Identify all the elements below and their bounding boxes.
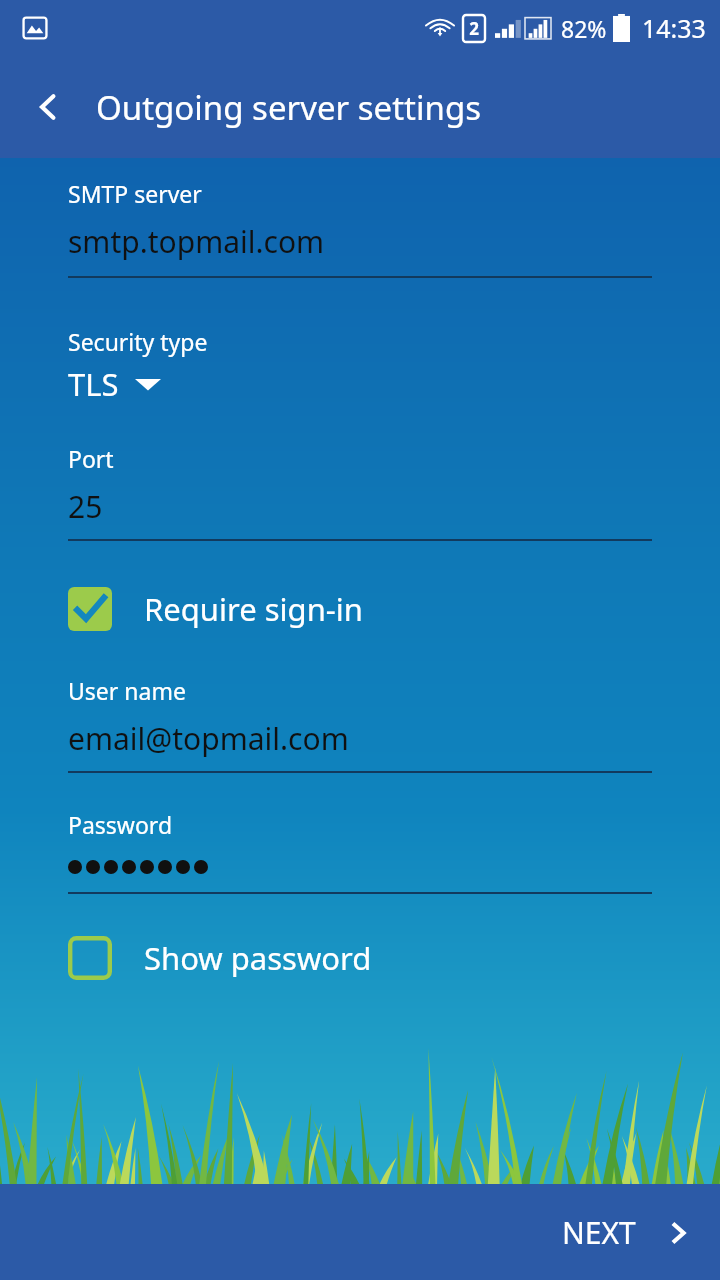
- staticText: Outgoing server settings: [96, 85, 482, 130]
- staticText: SMTP server: [68, 178, 202, 209]
- button[interactable]: Require sign-in: [0, 579, 720, 639]
- staticText: 2: [469, 17, 479, 40]
- button[interactable]: Navigate up: [20, 79, 76, 135]
- staticText: 14:33: [642, 11, 706, 45]
- button[interactable]: TLS: [0, 357, 720, 411]
- staticText: Password: [68, 809, 173, 840]
- staticText: Show password: [144, 937, 372, 979]
- button[interactable]: 25: [0, 474, 720, 527]
- button[interactable]: email@topmail.com: [0, 706, 720, 759]
- staticText: Port: [68, 443, 114, 474]
- staticText: Require sign-in: [144, 588, 363, 630]
- staticText: 82%: [561, 13, 607, 44]
- staticText: Security type: [68, 326, 208, 357]
- button[interactable]: Show password: [0, 928, 720, 988]
- button[interactable]: [0, 840, 720, 880]
- other: Screenshot saved: [22, 15, 48, 41]
- staticText: TLS: [68, 363, 119, 405]
- button[interactable]: smtp.topmail.com: [0, 209, 720, 262]
- button[interactable]: NEXT: [534, 1194, 720, 1271]
- staticText: NEXT: [562, 1212, 636, 1253]
- staticText: User name: [68, 675, 186, 706]
